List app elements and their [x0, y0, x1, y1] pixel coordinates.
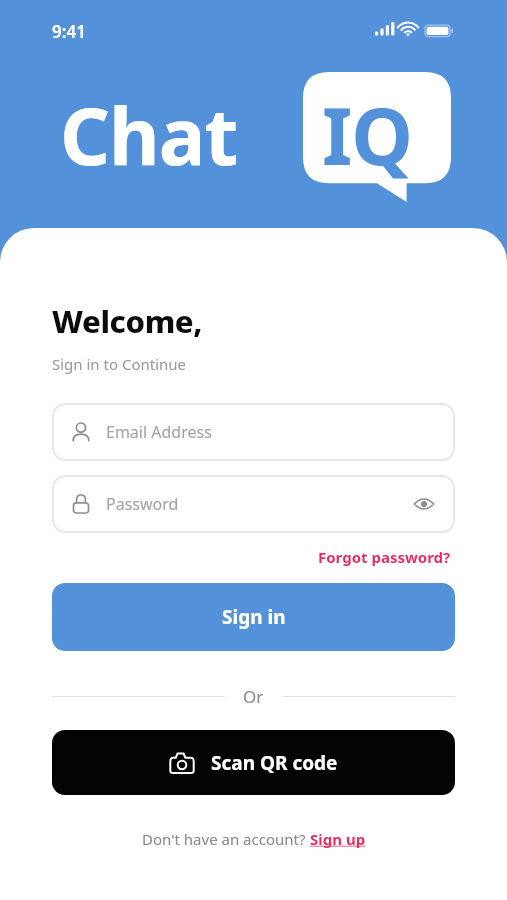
staticText: Sign up	[310, 829, 366, 849]
button[interactable]: Email Address	[52, 403, 455, 461]
staticText: Or	[243, 685, 264, 708]
staticText: 9:41	[52, 20, 86, 43]
button[interactable]: Forgot password?	[314, 543, 455, 571]
staticText: Chat	[60, 82, 238, 188]
button[interactable]: Sign up	[310, 829, 366, 849]
button[interactable]: Show password	[411, 491, 437, 517]
staticText: Sign in to Continue	[52, 354, 187, 374]
staticText: Welcome,	[52, 300, 203, 342]
button[interactable]: Sign in	[52, 583, 455, 651]
button[interactable]: Scan QR code	[52, 730, 455, 795]
staticText: IQ	[322, 82, 413, 188]
staticText: Scan QR code	[211, 750, 338, 776]
staticText: Password	[106, 493, 411, 515]
staticText: Don't have an account?	[142, 829, 310, 849]
staticText: Forgot password?	[318, 547, 451, 567]
staticText: Email Address	[106, 421, 437, 443]
button[interactable]: Password	[52, 475, 455, 533]
staticText: Sign in	[222, 604, 286, 630]
